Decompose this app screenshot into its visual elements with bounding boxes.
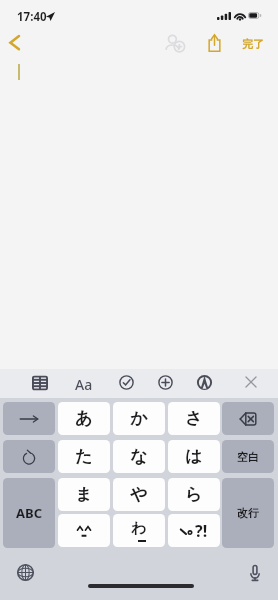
button[interactable]: わ — [113, 514, 165, 547]
staticText: さ — [185, 408, 203, 429]
button[interactable]: Close keyboard — [244, 375, 258, 389]
staticText: 完了 — [242, 37, 264, 51]
button[interactable]: Table — [32, 375, 48, 391]
button[interactable]: ら — [168, 478, 220, 511]
button[interactable]: あ — [58, 402, 110, 435]
button[interactable]: ABC — [3, 478, 55, 548]
button[interactable]: 完了 — [238, 33, 268, 55]
staticText: ?! — [195, 520, 208, 542]
button[interactable]: Delete — [222, 402, 274, 435]
staticText: ま — [75, 484, 93, 505]
button[interactable]: Checklist — [119, 375, 134, 390]
button[interactable]: た — [58, 440, 110, 473]
staticText: 17:40 — [17, 9, 47, 25]
button[interactable]: や — [113, 478, 165, 511]
button[interactable]: Add People — [165, 34, 185, 52]
button[interactable]: か — [113, 402, 165, 435]
button[interactable]: Next candidate — [3, 402, 55, 435]
button[interactable]: は — [168, 440, 220, 473]
staticText: 改行 — [237, 506, 259, 520]
button[interactable]: 改行 — [222, 478, 274, 548]
staticText: な — [130, 446, 148, 467]
button[interactable]: ま — [58, 478, 110, 511]
button[interactable]: Undo — [3, 440, 55, 473]
staticText: ABC — [16, 504, 42, 522]
button[interactable]: な — [113, 440, 165, 473]
button[interactable]: Insert — [158, 375, 173, 390]
staticText: か — [130, 408, 148, 429]
staticText: た — [75, 446, 93, 467]
staticText: は — [185, 446, 203, 467]
button[interactable]: Markup — [197, 375, 212, 390]
staticText: や — [130, 484, 148, 505]
staticText: わ — [131, 519, 147, 538]
staticText: 空白 — [237, 450, 259, 464]
button[interactable]: Aa — [75, 375, 93, 394]
button[interactable]: Switch keyboard — [17, 564, 34, 581]
button[interactable]: Dictation — [250, 565, 260, 581]
button[interactable]: Back — [2, 30, 28, 56]
button[interactable]: ?! — [168, 514, 220, 547]
staticText: Aa — [75, 375, 93, 394]
staticText: あ — [75, 408, 93, 429]
button[interactable]: Share — [208, 34, 221, 52]
staticText: ら — [185, 484, 203, 505]
button[interactable]: さ — [168, 402, 220, 435]
button[interactable] — [58, 514, 110, 547]
button[interactable]: 空白 — [222, 440, 274, 473]
